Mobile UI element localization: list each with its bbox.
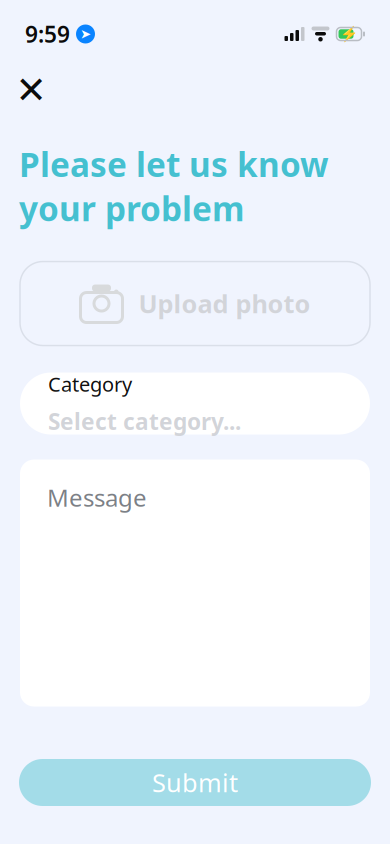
button[interactable]: Close xyxy=(7,66,55,114)
staticText: Message xyxy=(47,481,147,513)
button[interactable]: Upload photo xyxy=(0,261,390,345)
staticText: ⚡ xyxy=(340,26,358,42)
button[interactable]: Submit xyxy=(0,759,390,806)
staticText: 9:59 xyxy=(25,19,70,49)
button[interactable]: Message xyxy=(0,459,390,706)
button[interactable]: Category xyxy=(0,372,390,434)
staticText: Upload photo xyxy=(138,287,310,320)
staticText: ➤ xyxy=(80,26,91,41)
staticText: Category xyxy=(48,371,132,397)
staticText: Please let us know your problem xyxy=(19,142,329,230)
staticText: Submit xyxy=(152,766,238,799)
staticText: ✕ xyxy=(15,69,46,111)
staticText: Select category... xyxy=(48,406,241,436)
